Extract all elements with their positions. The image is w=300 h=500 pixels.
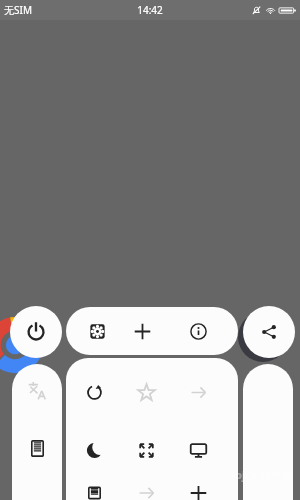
button[interactable]: Settings <box>77 311 117 351</box>
staticText: 14:42 <box>137 3 163 17</box>
button[interactable]: Power <box>10 306 62 358</box>
button[interactable]: Page info <box>178 311 218 351</box>
button[interactable]: Reading list <box>15 426 59 470</box>
button[interactable]: Forward <box>176 370 220 414</box>
button[interactable]: Bookmark <box>124 370 168 414</box>
button[interactable]: Desktop site <box>176 428 220 472</box>
button[interactable]: Translate <box>15 368 59 412</box>
button[interactable]: Share <box>243 306 295 358</box>
staticText: 无SIM <box>4 3 32 17</box>
button[interactable]: History <box>124 486 168 500</box>
button[interactable]: Reload <box>72 370 116 414</box>
button[interactable]: Dark mode <box>72 428 116 472</box>
button[interactable]: New tab <box>122 311 162 351</box>
staticText: pjc6 软件园 <box>235 467 294 482</box>
button[interactable]: Add to home screen <box>176 486 220 500</box>
button[interactable]: Downloads <box>72 486 116 500</box>
button[interactable]: Full screen <box>124 428 168 472</box>
